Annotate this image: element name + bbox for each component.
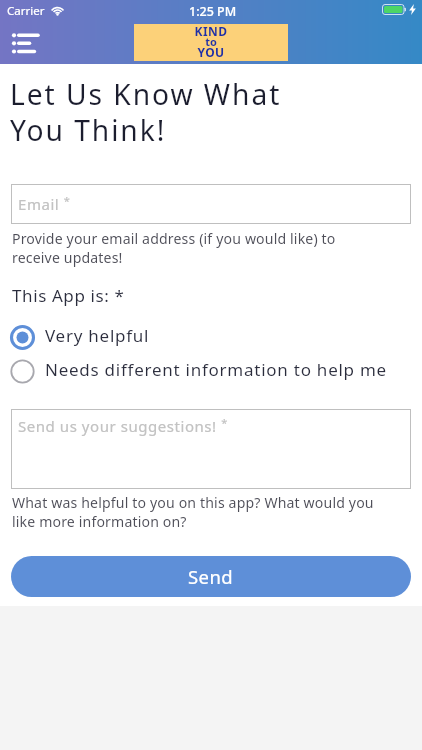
button[interactable]: Very helpful [10, 325, 412, 350]
button[interactable]: Kind to You logo [134, 24, 288, 61]
staticText: Send [188, 564, 234, 589]
staticText: Send us your suggestions! * [18, 415, 228, 436]
staticText: Very helpful [45, 324, 150, 347]
staticText: to [134, 34, 288, 49]
staticText: 1:25 PM [189, 3, 237, 20]
staticText: Provide your email address (if you would… [12, 229, 336, 267]
staticText: Let Us Know What You Think! [10, 75, 282, 150]
staticText: What was helpful to you on this app? Wha… [12, 493, 374, 531]
button[interactable]: Send [11, 556, 411, 597]
button[interactable]: Open navigation menu [10, 30, 42, 56]
staticText: YOU [134, 44, 288, 60]
button[interactable]: Send us your suggestions! * [11, 409, 411, 489]
staticText: Needs different information to help me [45, 358, 387, 381]
button[interactable]: Needs different information to help me [10, 359, 412, 384]
button[interactable]: Email * [11, 184, 411, 224]
staticText: Email * [18, 193, 71, 214]
staticText: This App is: * [12, 284, 125, 307]
staticText: KIND [134, 23, 288, 39]
staticText: Carrier [7, 3, 45, 19]
